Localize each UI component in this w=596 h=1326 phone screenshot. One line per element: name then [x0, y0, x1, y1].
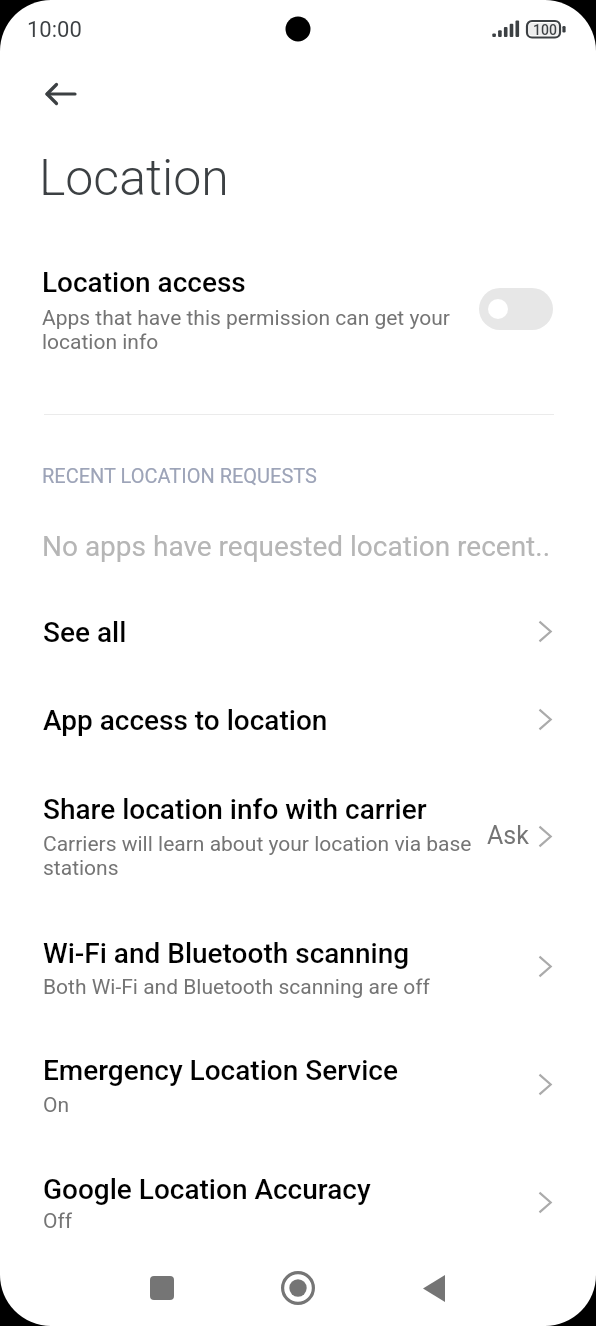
button[interactable]: Wi-Fi and Bluetooth scanning [0, 923, 596, 1040]
staticText: Emergency Location Service [43, 1054, 398, 1087]
staticText: See all [43, 616, 127, 649]
button[interactable]: Recent apps [110, 1264, 214, 1312]
staticText: 10:00 [27, 17, 82, 43]
button[interactable]: Emergency Location Service [0, 1040, 596, 1159]
button[interactable]: See all [0, 602, 596, 690]
staticText: Both Wi-Fi and Bluetooth scanning are of… [43, 975, 430, 1000]
button[interactable]: Location access toggle [479, 288, 553, 330]
button[interactable]: Navigate up [34, 68, 86, 120]
staticText: Wi-Fi and Bluetooth scanning [43, 937, 410, 970]
button[interactable]: Google Location Accuracy [0, 1159, 596, 1276]
button[interactable]: App access to location [0, 690, 596, 779]
staticText: 100 [533, 22, 557, 38]
staticText: Google Location Accuracy [43, 1173, 371, 1206]
staticText: App access to location [43, 704, 328, 737]
staticText: No apps have requested location recent.. [42, 530, 551, 563]
button[interactable]: Location access [0, 252, 596, 362]
staticText: Location [39, 149, 229, 208]
button[interactable]: Back [382, 1264, 486, 1312]
staticText: Ask [487, 821, 529, 850]
staticText: On [43, 1093, 70, 1118]
staticText: Carriers will learn about your location … [43, 832, 483, 880]
staticText: Location access [42, 266, 246, 299]
staticText: Share location info with carrier [43, 793, 427, 826]
button[interactable]: Share location info with carrier [0, 779, 596, 923]
staticText: Apps that have this permission can get y… [42, 306, 462, 354]
staticText: RECENT LOCATION REQUESTS [42, 464, 317, 487]
staticText: Off [43, 1209, 73, 1234]
button[interactable]: Home [246, 1264, 350, 1312]
